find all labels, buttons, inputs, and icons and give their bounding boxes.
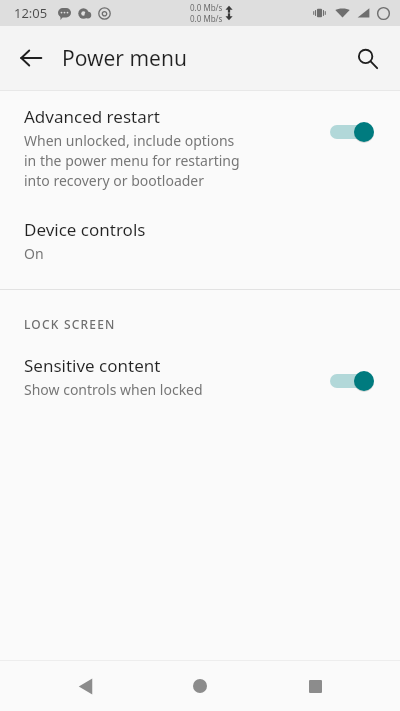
staticText: On: [24, 244, 44, 263]
button[interactable]: Advanced restart: [330, 117, 382, 147]
staticText: 0.0 Mb/s: [190, 2, 223, 13]
button[interactable]: Recent apps: [285, 661, 345, 711]
staticText: Power menu: [62, 44, 344, 73]
staticText: 12:05: [14, 4, 48, 22]
staticText: LOCK SCREEN: [24, 316, 116, 332]
staticText: Sensitive content: [24, 354, 161, 377]
button[interactable]: Home: [170, 661, 230, 711]
staticText: 0.0 Mb/s: [190, 13, 223, 24]
button[interactable]: Back: [8, 35, 54, 81]
button[interactable]: Sensitive content: [0, 354, 400, 405]
button[interactable]: Search: [344, 35, 390, 81]
staticText: Advanced restart: [24, 105, 160, 128]
button[interactable]: Sensitive content: [330, 366, 382, 396]
staticText: Device controls: [24, 218, 146, 241]
staticText: Show controls when locked: [24, 380, 203, 399]
button[interactable]: Advanced restart: [0, 105, 400, 196]
button[interactable]: Back: [55, 661, 115, 711]
button[interactable]: Device controls: [0, 216, 400, 277]
staticText: When unlocked, include options in the po…: [24, 131, 240, 190]
